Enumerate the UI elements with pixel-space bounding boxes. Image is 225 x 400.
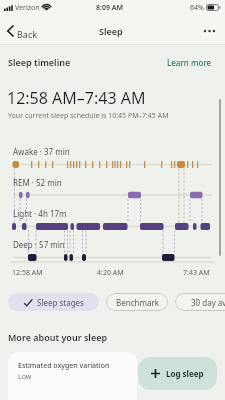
button[interactable]: Sleep stages [8,293,99,311]
staticText: Verizon [15,3,40,13]
button[interactable]: Back [4,22,44,40]
button[interactable]: 30 day avg [175,293,225,311]
staticText: Benchmark [116,297,159,308]
staticText: Sleep timeline [8,56,71,68]
staticText: Your current sleep schedule is 10:45 PM–… [8,111,169,121]
button[interactable]: Log sleep [138,357,217,390]
staticText: 12:58 AM–7:43 AM [7,87,146,109]
staticText: Estimated oxygen variation [18,361,110,371]
staticText: Back [17,28,38,40]
staticText: 7:43 AM [183,268,210,278]
staticText: Low [18,372,32,382]
staticText: 4:20 AM [97,268,124,278]
staticText: 30 day avg [191,297,225,308]
button[interactable]: Learn more [167,57,212,68]
staticText: Deep · 57 min [13,239,65,250]
staticText: Sleep [99,25,123,37]
staticText: Sleep stages [37,297,84,308]
staticText: Log sleep [166,368,204,379]
staticText: 8:09 AM [96,3,123,13]
button[interactable] [200,24,222,38]
staticText: More about your sleep [8,331,108,343]
button[interactable]: Benchmark [106,293,168,311]
staticText: 12:58 AM [12,268,43,278]
staticText: 64% [190,3,204,13]
staticText: REM · 52 min [13,177,62,188]
staticText: Light · 4h 17m [13,208,67,219]
staticText: Awake · 37 min [13,146,70,157]
button[interactable]: Estimated oxygen variation [8,352,137,400]
